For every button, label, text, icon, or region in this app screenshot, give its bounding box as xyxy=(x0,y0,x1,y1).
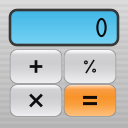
button[interactable]: Multiply xyxy=(10,85,61,116)
button[interactable]: Percent xyxy=(64,50,115,83)
button[interactable]: Equals xyxy=(64,85,115,116)
button[interactable]: Add xyxy=(10,50,61,83)
